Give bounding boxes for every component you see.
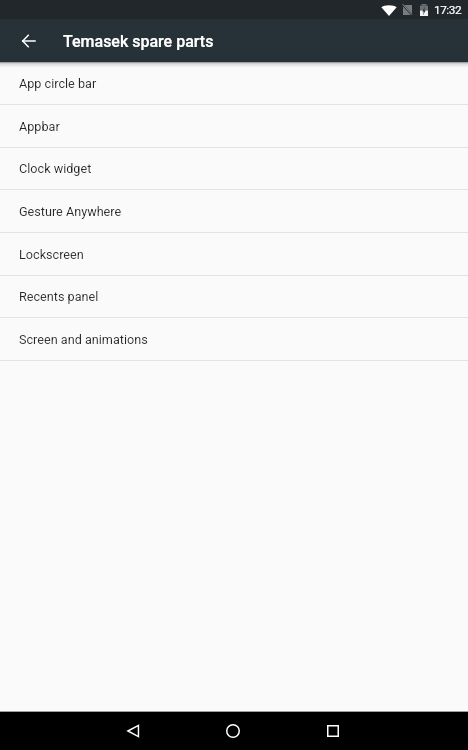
staticText: Lockscreen [19, 247, 84, 262]
staticText: 17:32 [434, 3, 462, 17]
button[interactable]: App circle bar [0, 62, 468, 105]
button[interactable]: Appbar [0, 105, 468, 148]
button[interactable]: Gesture Anywhere [0, 190, 468, 233]
staticText: Recents panel [19, 289, 99, 304]
staticText: Clock widget [19, 161, 92, 176]
button[interactable]: Navigate up [13, 26, 43, 56]
button[interactable]: Recents [283, 712, 383, 750]
button[interactable]: Recents panel [0, 276, 468, 318]
staticText: Gesture Anywhere [19, 204, 122, 219]
button[interactable]: Back [83, 712, 183, 750]
staticText: Temasek spare parts [63, 32, 214, 51]
staticText: Screen and animations [19, 332, 148, 347]
button[interactable]: Clock widget [0, 148, 468, 190]
staticText: Appbar [19, 119, 60, 134]
button[interactable]: Lockscreen [0, 233, 468, 276]
button[interactable]: Home [183, 712, 283, 750]
staticText: App circle bar [19, 76, 97, 91]
button[interactable]: Screen and animations [0, 318, 468, 361]
